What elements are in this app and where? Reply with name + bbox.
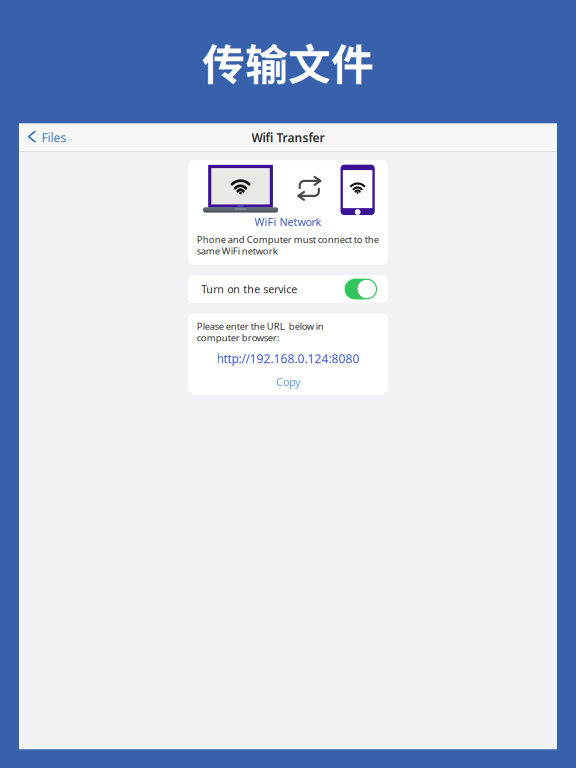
staticText: Please enter the URL below in computer b… xyxy=(197,320,324,344)
staticText: Phone and Computer must connect to the s… xyxy=(197,233,379,257)
button[interactable]: Turn on the service xyxy=(188,275,388,303)
staticText: Files xyxy=(41,130,66,145)
staticText: WiFi Network xyxy=(254,215,321,229)
button[interactable]: Copy xyxy=(188,367,388,395)
staticText: Wifi Transfer xyxy=(251,130,324,145)
staticText: 传输文件 xyxy=(202,31,374,93)
staticText: http://192.168.0.124:8080 xyxy=(216,351,359,367)
staticText: Turn on the service xyxy=(201,282,297,296)
staticText: Copy xyxy=(276,375,300,389)
button[interactable]: Files xyxy=(19,124,66,151)
